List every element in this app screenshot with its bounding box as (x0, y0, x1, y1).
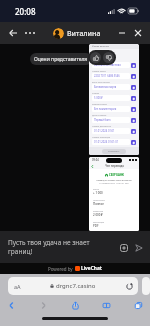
staticText: Дата и время (92, 114, 107, 117)
staticText: Комментарий (92, 103, 107, 106)
staticText: Виталина (67, 29, 101, 39)
staticText: 2202 7011 6486 5546 (94, 74, 120, 78)
staticText: Сумма (92, 92, 100, 95)
button[interactable]: Forward (36, 298, 50, 312)
button[interactable]: аА (8, 277, 138, 295)
button[interactable]: Back (5, 25, 21, 41)
button[interactable]: More options (22, 25, 38, 41)
staticText: Комиссия (93, 210, 103, 213)
staticText: LiveChat (81, 265, 102, 272)
staticText: Перевод по номеру карты выполнен (93, 179, 135, 182)
button[interactable]: Attach (117, 241, 130, 254)
staticText: Чек перевода (105, 164, 124, 168)
staticText: 20:08 (15, 6, 36, 17)
staticText: Получатель (93, 199, 105, 202)
button[interactable]: Like (90, 52, 101, 63)
staticText: Банковская карта (94, 85, 117, 89)
staticText: аА (14, 283, 21, 290)
staticText: Реквизиты (92, 59, 104, 62)
staticText: Карта (93, 188, 99, 191)
staticText: Оцени представителя (34, 56, 88, 63)
staticText: Отправить (108, 150, 120, 153)
staticText: Форма выплаты (92, 45, 110, 48)
staticText: СБЕР БАНК (109, 173, 124, 177)
button[interactable]: Reload (124, 281, 135, 292)
staticText: 09:04 (92, 158, 99, 162)
staticText: Квитанция (93, 221, 105, 224)
button[interactable]: Tabs (131, 298, 145, 312)
button[interactable]: Dislike (103, 52, 114, 63)
staticText: Выплата мгновенная (94, 63, 121, 67)
staticText: 5 000 ₽ (94, 96, 103, 100)
button[interactable]: Minimize (114, 25, 130, 41)
staticText: 01.01.2024 01:01:01 (94, 140, 119, 144)
staticText: drgnc7.casino (56, 282, 96, 290)
button[interactable]: Back (4, 298, 18, 312)
staticText: Без комментария (94, 107, 117, 111)
button[interactable]: Close (130, 25, 146, 41)
button[interactable]: Share (68, 298, 82, 312)
staticText: Powered by (48, 266, 73, 272)
staticText: PDF (93, 224, 99, 228)
staticText: 2 000 ₽ (93, 213, 103, 217)
button[interactable]: Bookmarks (99, 298, 113, 312)
staticText: Номер операции (92, 136, 111, 139)
staticText: Номер документа (92, 125, 112, 128)
button[interactable]: Send (132, 241, 145, 254)
staticText: Первый банк (94, 118, 111, 122)
staticText: 01.01.2024 01:01 (94, 129, 115, 133)
button[interactable]: 09:04 (89, 157, 139, 231)
button[interactable]: Форма выплаты (89, 44, 139, 155)
staticText: Полное (93, 202, 104, 206)
button[interactable]: Tabs (142, 277, 150, 295)
staticText: Пусть твоя удача не знает границ! (8, 238, 92, 256)
button[interactable]: Оцени представителя (30, 53, 92, 65)
staticText: Банк получателя (92, 81, 110, 84)
staticText: 01 января 2024 10:57:31 мск (93, 182, 135, 185)
staticText: + 1 000 (93, 191, 103, 195)
staticText: Номер карты (92, 70, 107, 73)
